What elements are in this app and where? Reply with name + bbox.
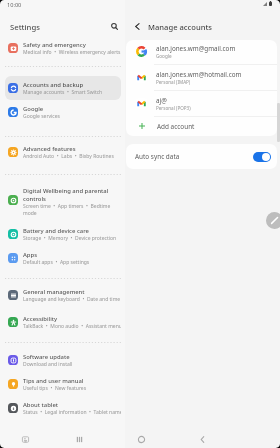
staticText: Add account bbox=[157, 122, 195, 131]
staticText: Google services bbox=[23, 113, 60, 120]
staticText: Screen time • App timers • Bedtime mode bbox=[23, 203, 111, 215]
button[interactable]: Google bbox=[5, 100, 121, 124]
staticText: Settings bbox=[10, 22, 40, 32]
button[interactable]: Back bbox=[131, 20, 144, 33]
button[interactable]: Edit bbox=[266, 212, 280, 229]
staticText: Default apps • App settings bbox=[23, 259, 90, 266]
staticText: Accessibility bbox=[23, 315, 58, 323]
button[interactable]: Capture screenshot bbox=[16, 430, 34, 448]
staticText: Useful tips • New features bbox=[23, 385, 87, 392]
button[interactable]: Accounts and backup bbox=[5, 76, 121, 100]
staticText: alan.jones.wm@hotmail.com bbox=[156, 70, 242, 79]
button[interactable]: Safety and emergency bbox=[5, 36, 121, 60]
button[interactable]: Recents bbox=[70, 430, 88, 448]
button[interactable]: General management bbox=[5, 283, 121, 307]
staticText: Download and install bbox=[23, 361, 73, 368]
staticText: Status • Legal information • Tablet name bbox=[23, 409, 121, 416]
staticText: Accounts and backup bbox=[23, 81, 84, 89]
button[interactable]: Home bbox=[132, 430, 150, 448]
staticText: TalkBack • Mono audio • Assistant menu bbox=[23, 323, 121, 330]
button[interactable]: Auto sync data bbox=[126, 144, 277, 169]
button[interactable]: aj@ bbox=[126, 93, 277, 114]
staticText: Android Auto • Labs • Bixby Routines bbox=[23, 153, 114, 160]
staticText: Digital Wellbeing and parental controls bbox=[23, 187, 109, 203]
button[interactable]: Advanced features bbox=[5, 140, 121, 164]
staticText: Battery and device care bbox=[23, 227, 89, 235]
button[interactable]: Apps bbox=[5, 246, 121, 270]
staticText: About tablet bbox=[23, 401, 59, 409]
staticText: Software update bbox=[23, 353, 70, 361]
staticText: 10:00 bbox=[7, 1, 22, 9]
staticText: Personal (IMAP) bbox=[156, 79, 191, 85]
staticText: Apps bbox=[23, 251, 38, 259]
staticText: Personal (POP3) bbox=[156, 105, 191, 111]
staticText: aj@ bbox=[156, 96, 167, 105]
staticText: Storage • Memory • Device protection bbox=[23, 235, 117, 242]
button[interactable]: Search bbox=[108, 20, 121, 33]
staticText: Google bbox=[156, 53, 172, 59]
staticText: Medical info • Wireless emergency alerts bbox=[23, 49, 121, 56]
button[interactable]: Digital Wellbeing and parental controls bbox=[5, 184, 121, 215]
button[interactable]: alan.jones.wm@hotmail.com bbox=[126, 67, 277, 88]
staticText: Google bbox=[23, 105, 44, 113]
button[interactable]: Tips and user manual bbox=[5, 372, 121, 396]
button[interactable]: Accessibility bbox=[5, 310, 121, 334]
button[interactable]: About tablet bbox=[5, 396, 121, 420]
staticText: alan.jones.wm@gmail.com bbox=[156, 44, 236, 53]
staticText: General management bbox=[23, 288, 85, 296]
staticText: Auto sync data bbox=[135, 152, 180, 161]
button[interactable]: Add account bbox=[126, 116, 277, 136]
button[interactable]: Battery and device care bbox=[5, 222, 121, 246]
button[interactable]: Software update bbox=[5, 348, 121, 372]
staticText: Advanced features bbox=[23, 145, 76, 153]
staticText: Language and keyboard • Date and time bbox=[23, 296, 121, 303]
staticText: Safety and emergency bbox=[23, 41, 86, 49]
button[interactable]: Back bbox=[193, 430, 211, 448]
button[interactable]: alan.jones.wm@gmail.com bbox=[126, 41, 277, 62]
staticText: Tips and user manual bbox=[23, 377, 84, 385]
staticText: Manage accounts • Smart Switch bbox=[23, 89, 103, 96]
staticText: Manage accounts bbox=[148, 22, 213, 32]
